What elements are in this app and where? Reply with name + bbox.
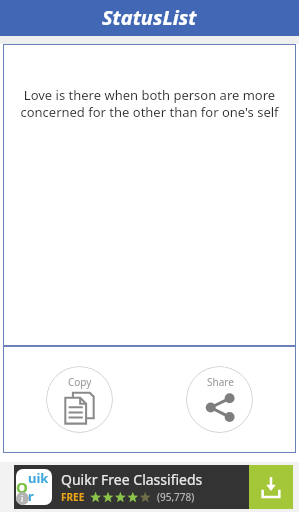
button[interactable]: Share	[186, 366, 253, 433]
staticText: i	[21, 493, 24, 504]
staticText: Copy	[68, 375, 92, 389]
staticText: (95,778)	[157, 490, 195, 504]
button[interactable]: Love is there when both person are more …	[3, 44, 296, 346]
button[interactable]: Copy	[46, 366, 113, 433]
staticText: uikr	[28, 469, 52, 505]
staticText: Quikr Free Classifieds	[61, 470, 203, 489]
button[interactable]: Q	[14, 465, 293, 509]
staticText: Love is there when both person are more …	[17, 86, 282, 121]
staticText: Share	[207, 375, 234, 389]
button[interactable]: Install	[249, 465, 293, 509]
staticText: StatusList	[102, 4, 197, 31]
staticText: FREE	[61, 490, 85, 504]
staticText: Q	[16, 477, 28, 497]
